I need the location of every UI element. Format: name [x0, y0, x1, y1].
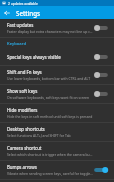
staticText: 2 updates available	[8, 1, 38, 5]
button[interactable]: Hide modifiers	[0, 104, 114, 122]
button[interactable]: Bumps arrows	[0, 161, 114, 179]
staticText: Hide the keys in soft method until soft …	[7, 114, 93, 119]
staticText: Settings	[16, 9, 41, 17]
staticText: Special keys always visible	[7, 54, 61, 60]
button[interactable]: Camera shortcut	[0, 142, 114, 160]
staticText: Camera shortcut	[7, 145, 42, 151]
staticText: Select functions ALT+J and SHIFT for Tab	[7, 133, 71, 138]
button[interactable]: Special keys always visible	[0, 49, 114, 65]
button[interactable]: Show soft keys	[0, 85, 114, 103]
staticText: Fast updates	[7, 22, 34, 28]
staticText: Faster display but extra characters may …	[7, 29, 93, 34]
button[interactable]: Shift and Fn keys	[0, 66, 114, 84]
staticText: Vibrate when sending screen keys, carefu…	[7, 171, 93, 176]
staticText: Select which shortcut is trigger when th…	[7, 152, 93, 157]
staticText: Show soft keys	[7, 88, 38, 94]
button[interactable]: Desktop shortcuts	[0, 123, 114, 141]
button[interactable]: Navigate up	[0, 6, 13, 19]
button[interactable]: Fast updates	[0, 19, 114, 37]
staticText: Shift and Fn keys	[7, 69, 42, 75]
staticText: Hide modifiers	[7, 107, 38, 113]
staticText: Bumps arrows	[7, 164, 37, 170]
staticText: On software keyboards, soft keys wont fi…	[7, 95, 90, 100]
staticText: Use lower keyboards, bottom bar with CTR…	[7, 76, 91, 81]
staticText: Keyboard	[7, 41, 27, 47]
staticText: Desktop shortcuts	[7, 126, 45, 132]
